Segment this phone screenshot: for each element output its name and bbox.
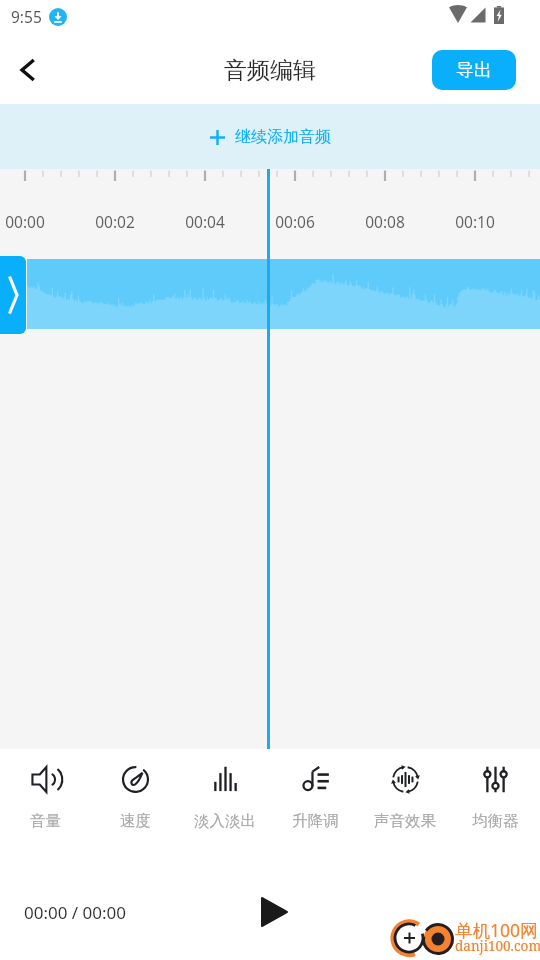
staticText: 音频编辑 xyxy=(224,56,316,85)
staticText: 00:00 / 00:00 xyxy=(24,901,127,924)
staticText: 00:10 xyxy=(455,211,495,232)
button[interactable]: Audio clip xyxy=(0,259,540,329)
button[interactable]: 继续添加音频 xyxy=(0,104,540,169)
button[interactable]: 导出 xyxy=(432,50,516,90)
staticText: 音量 xyxy=(30,811,61,831)
button[interactable]: Back xyxy=(0,36,56,104)
staticText: 升降调 xyxy=(292,811,339,831)
button[interactable]: 均衡器 xyxy=(450,749,540,859)
button[interactable]: Trim start xyxy=(0,256,26,334)
staticText: 00:04 xyxy=(185,211,225,232)
button[interactable]: 速度 xyxy=(90,749,180,859)
staticText: 速度 xyxy=(120,811,151,831)
staticText: 淡入淡出 xyxy=(194,811,256,831)
button[interactable]: 音量 xyxy=(0,749,90,859)
staticText: 导出 xyxy=(456,59,492,82)
staticText: 继续添加音频 xyxy=(235,127,331,147)
staticText: 00:00 xyxy=(5,211,45,232)
staticText: 00:02 xyxy=(95,211,135,232)
staticText: 9:55 xyxy=(11,6,42,27)
button[interactable]: 声音效果 xyxy=(360,749,450,859)
staticText: 均衡器 xyxy=(472,811,519,831)
button[interactable]: 淡入淡出 xyxy=(180,749,270,859)
button[interactable]: Play xyxy=(248,886,300,938)
staticText: 声音效果 xyxy=(374,811,436,831)
staticText: danji100.com xyxy=(455,937,540,955)
staticText: 单机100网 xyxy=(455,918,538,942)
staticText: 00:06 xyxy=(275,211,315,232)
staticText: 00:08 xyxy=(365,211,405,232)
button[interactable]: 升降调 xyxy=(270,749,360,859)
